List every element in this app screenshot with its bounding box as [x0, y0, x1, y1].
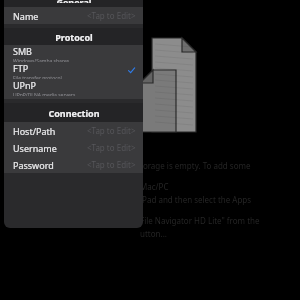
button[interactable]: Name [4, 7, 143, 24]
staticText: File Navigator HD Lite" from the [140, 215, 260, 226]
staticText: File transfer protocol [13, 75, 62, 79]
staticText: <Tap to Edit> [87, 159, 136, 170]
staticText: SMB [13, 45, 32, 57]
button[interactable]: UPnP [4, 79, 143, 96]
staticText: Username [13, 142, 57, 154]
staticText: UPnP/DLNA media servers [13, 92, 76, 96]
staticText: Windows/Samba shares [13, 58, 70, 62]
staticText: <Tap to Edit> [87, 10, 136, 21]
staticText: <Tap to Edit> [87, 125, 136, 136]
button[interactable]: Password [4, 156, 143, 173]
button[interactable]: FTP [4, 62, 143, 79]
staticText: Password [13, 159, 54, 171]
staticText: Protocol [55, 31, 93, 43]
staticText: <Tap to Edit> [87, 142, 136, 153]
button[interactable]: SMB [4, 45, 143, 62]
staticText: Host/Path [13, 125, 56, 137]
staticText: FTP [13, 62, 29, 74]
staticText: Mac/PC [140, 181, 169, 192]
staticText: Name [13, 10, 39, 22]
staticText: Connection [48, 107, 100, 119]
staticText: UPnP [13, 79, 37, 91]
staticText: General [56, 0, 92, 3]
button[interactable]: Host/Path [4, 122, 143, 139]
other: Selected [128, 67, 135, 74]
staticText: utton... [140, 228, 167, 239]
staticText: torage is empty. To add some [140, 160, 251, 171]
staticText: iPad and then select the Apps [140, 194, 252, 205]
button[interactable]: Username [4, 139, 143, 156]
